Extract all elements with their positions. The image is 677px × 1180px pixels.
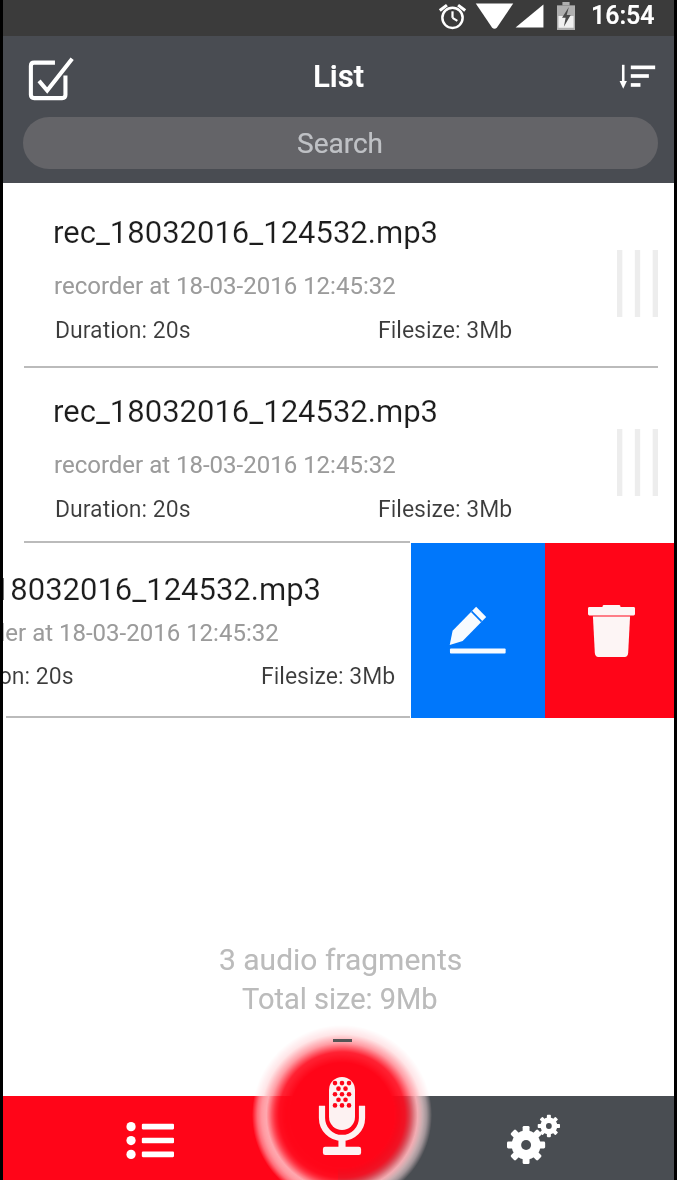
staticText: rec_18032016_124532.mp3: [0, 571, 321, 607]
staticText: rec_18032016_124532.mp3: [53, 214, 438, 250]
staticText: Filesize: 3Mb: [261, 663, 396, 690]
staticText: Search: [297, 127, 384, 160]
button[interactable]: Edit: [411, 543, 545, 718]
staticText: List: [313, 58, 365, 94]
staticText: Total size: 9Mb: [242, 982, 438, 1016]
button[interactable]: Settings: [338, 1096, 677, 1180]
button[interactable]: rec_18032016_124532.mp3: [0, 543, 411, 718]
staticText: recorder at 18-03-2016 12:45:32: [54, 272, 396, 300]
staticText: Filesize: 3Mb: [378, 317, 513, 344]
button[interactable]: Delete: [545, 543, 677, 718]
staticText: Duration: 20s: [55, 317, 191, 344]
staticText: rec_18032016_124532.mp3: [53, 393, 438, 429]
button[interactable]: Record: [277, 1050, 407, 1180]
staticText: recorder at 18-03-2016 12:45:32: [0, 619, 279, 647]
button[interactable]: Select all: [8, 36, 90, 118]
staticText: recorder at 18-03-2016 12:45:32: [54, 451, 396, 479]
staticText: Duration: 20s: [0, 663, 74, 690]
button[interactable]: Sort: [596, 36, 674, 114]
button[interactable]: rec_18032016_124532.mp3: [0, 368, 677, 543]
button[interactable]: Search: [23, 117, 658, 169]
staticText: 3 audio fragments: [219, 942, 463, 977]
staticText: Filesize: 3Mb: [378, 496, 513, 523]
button[interactable]: Recordings list: [0, 1096, 338, 1180]
button[interactable]: rec_18032016_124532.mp3: [0, 183, 677, 367]
staticText: 16:54: [591, 1, 655, 30]
staticText: Duration: 20s: [55, 496, 191, 523]
